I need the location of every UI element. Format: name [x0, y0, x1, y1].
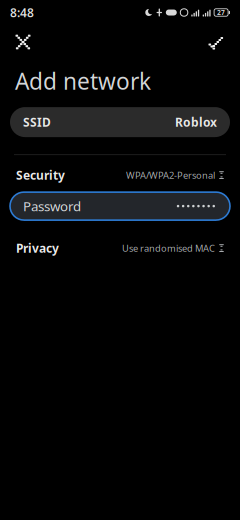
- staticText: Privacy: [16, 240, 59, 256]
- button[interactable]: SSID: [10, 107, 230, 137]
- staticText: 27: [217, 8, 225, 17]
- staticText: Add network: [15, 66, 151, 96]
- staticText: Use randomised MAC: [122, 242, 215, 254]
- staticText: Roblox: [175, 114, 217, 130]
- staticText: SSID: [23, 114, 51, 130]
- staticText: Password: [23, 197, 81, 215]
- button[interactable]: Close: [5, 25, 41, 59]
- staticText: WPA/WPA2-Personal: [126, 169, 215, 181]
- staticText: Security: [16, 167, 65, 183]
- button[interactable]: Privacy: [0, 237, 240, 259]
- button[interactable]: Security: [0, 164, 240, 186]
- staticText: 8:48: [10, 4, 34, 20]
- button[interactable]: Save network: [199, 25, 235, 59]
- button[interactable]: Password: [10, 192, 230, 220]
